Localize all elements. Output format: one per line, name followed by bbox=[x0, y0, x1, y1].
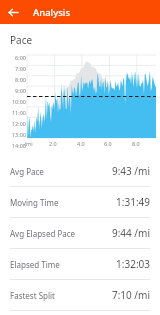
staticText: Avg Pace bbox=[10, 166, 44, 177]
staticText: 12:00 bbox=[3, 120, 26, 127]
staticText: 8.0 bbox=[132, 140, 140, 147]
staticText: 9:43 /mi bbox=[111, 164, 150, 178]
staticText: Fastest Split bbox=[10, 290, 55, 301]
staticText: 6.0 bbox=[104, 140, 112, 147]
button[interactable]: Avg Elapsed Pace bbox=[0, 218, 160, 248]
staticText: 14:00 bbox=[3, 142, 26, 149]
button[interactable]: Elapsed Time bbox=[0, 249, 160, 279]
staticText: 8:00 bbox=[3, 76, 26, 83]
staticText: 1:32:03 bbox=[116, 257, 150, 271]
staticText: Avg Elapsed Pace bbox=[10, 228, 76, 239]
button[interactable]: Fastest Split bbox=[0, 280, 160, 310]
staticText: 10:00 bbox=[3, 98, 26, 105]
staticText: 7:10 /mi bbox=[111, 288, 150, 302]
staticText: Analysis bbox=[33, 6, 70, 19]
staticText: Pace bbox=[10, 33, 33, 47]
staticText: 4.0 bbox=[77, 140, 85, 147]
button[interactable]: Avg Pace bbox=[0, 156, 160, 186]
button[interactable]: Moving Time bbox=[0, 187, 160, 217]
staticText: 11:00 bbox=[3, 109, 26, 116]
staticText: 9:44 /mi bbox=[111, 226, 150, 240]
staticText: /mi bbox=[24, 140, 33, 147]
button[interactable]: Back bbox=[4, 3, 22, 21]
staticText: 7:00 bbox=[3, 65, 26, 72]
staticText: 9:00 bbox=[3, 87, 26, 94]
staticText: Moving Time bbox=[10, 197, 59, 208]
staticText: 6:00 bbox=[3, 54, 26, 61]
staticText: Elapsed Time bbox=[10, 259, 60, 270]
staticText: 1:31:49 bbox=[116, 195, 150, 209]
staticText: 13:00 bbox=[3, 131, 26, 138]
staticText: 2.0 bbox=[49, 140, 57, 147]
